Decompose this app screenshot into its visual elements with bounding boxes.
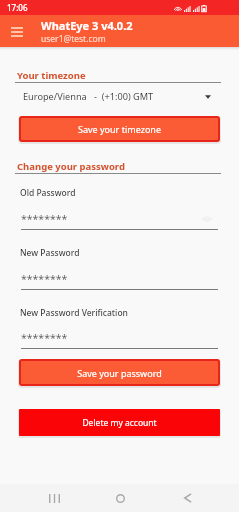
button[interactable]: ******** bbox=[21, 212, 218, 230]
button[interactable]: Home bbox=[106, 484, 134, 512]
button[interactable]: Europe/Vienna - (+1:00) GMT bbox=[19, 87, 220, 105]
button[interactable]: Delete my account bbox=[19, 409, 220, 436]
staticText: ******** bbox=[21, 272, 68, 286]
button[interactable]: Recent apps bbox=[40, 484, 68, 512]
staticText: 17:06 bbox=[7, 2, 28, 13]
staticText: WhatEye 3 v4.0.2 bbox=[41, 18, 133, 33]
button[interactable]: ******** bbox=[21, 272, 218, 290]
button[interactable]: Open navigation menu bbox=[4, 19, 29, 44]
staticText: ******** bbox=[21, 331, 68, 345]
staticText: Old Password bbox=[20, 187, 76, 199]
staticText: Save your timezone bbox=[78, 123, 161, 135]
staticText: Your timezone bbox=[17, 69, 86, 82]
staticText: ******** bbox=[21, 212, 68, 226]
staticText: Save your password bbox=[77, 367, 162, 379]
button[interactable]: ******** bbox=[21, 331, 218, 349]
staticText: New Password bbox=[20, 247, 80, 259]
button[interactable]: Save your password bbox=[19, 359, 220, 386]
staticText: Delete my account bbox=[82, 417, 157, 429]
staticText: user1@test.com bbox=[41, 33, 106, 45]
staticText: Europe/Vienna - (+1:00) GMT bbox=[23, 90, 154, 103]
button[interactable]: Back bbox=[173, 484, 201, 512]
button[interactable]: Save your timezone bbox=[19, 116, 220, 142]
staticText: New Password Verification bbox=[20, 307, 128, 319]
staticText: Change your password bbox=[17, 160, 125, 173]
